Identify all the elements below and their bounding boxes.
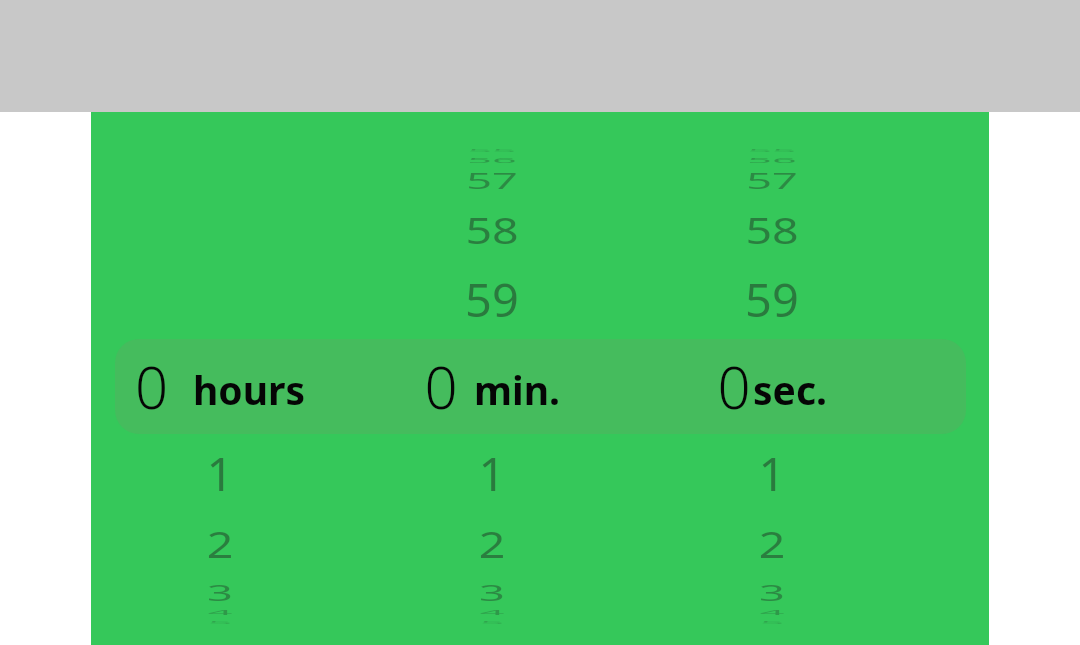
- button[interactable]: Hours picker: [115, 112, 390, 645]
- button[interactable]: Minutes picker: [390, 112, 660, 645]
- button[interactable]: Seconds picker: [660, 112, 966, 645]
